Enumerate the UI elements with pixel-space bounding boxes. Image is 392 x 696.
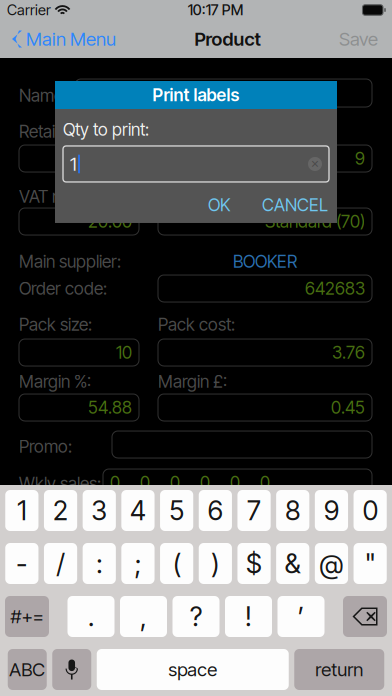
staticText: #+= [10,605,43,628]
staticText: . [88,600,94,633]
button[interactable]: , [120,596,167,637]
staticText: Order code: [19,278,107,299]
button[interactable] [112,431,372,458]
button[interactable]: Standard (70) [158,208,372,235]
button[interactable]: 54.88 [19,394,139,421]
staticText: Standard (70) [265,211,365,232]
staticText: - [16,547,27,580]
staticText: 0.45 [331,397,365,418]
button[interactable]: 7 [237,490,271,531]
button[interactable]: ’ [277,596,324,637]
staticText: Wkly sales: [19,473,101,494]
button[interactable]: ) [199,543,232,584]
staticText: 2 [53,494,68,527]
staticText: CANCEL [262,194,328,215]
staticText: 10 [116,342,132,363]
button[interactable]: 3.76 [158,339,372,366]
button[interactable]: Save [339,20,392,58]
staticText: Main Menu [26,28,116,50]
staticText: ; [134,547,141,580]
staticText: ! [245,600,252,633]
button[interactable]: 9 [158,145,372,172]
staticText: 9 [355,148,365,169]
staticText: " [365,547,376,580]
staticText: , [140,600,147,633]
button[interactable]: Dictate [52,649,91,690]
staticText: & [285,547,301,580]
button[interactable]: 642683 [158,275,372,302]
button[interactable]: ; [121,543,155,584]
staticText: Product [194,28,260,50]
button[interactable]: ? [172,596,219,637]
button[interactable]: " [353,543,387,584]
staticText: OK [208,194,230,215]
button[interactable]: : [83,543,116,584]
staticText: 642683 [305,278,365,299]
button[interactable]: & [276,543,309,584]
staticText: space [168,658,217,681]
button[interactable]: 0.45 [158,394,372,421]
staticText: Main supplier: [19,251,121,272]
staticText: Retail price: [19,121,103,142]
staticText: 8 [285,494,300,527]
staticText: Carrier [7,1,51,19]
button[interactable]: Delete [343,596,387,637]
button[interactable]: ABC [8,649,47,690]
button[interactable]: BOOKER [158,251,372,272]
button[interactable]: 10 [19,339,139,366]
button[interactable]: 6 [199,490,232,531]
staticText: ) [211,547,219,580]
button[interactable]: ( [160,543,193,584]
button[interactable]: 0 [353,490,387,531]
button[interactable]: 2 [44,490,77,531]
staticText: Margin £: [158,371,227,392]
staticText: 7 [247,494,261,527]
button[interactable]: space [97,649,289,690]
button[interactable]: 8 [276,490,309,531]
button[interactable]: . [67,596,114,637]
staticText: @ [319,547,343,580]
staticText: 0 0 0 0 0 0 [110,472,270,493]
staticText: 1 [70,153,77,175]
button[interactable]: return [294,649,384,690]
staticText: 20.00 [88,211,132,232]
button[interactable]: #+= [5,596,49,637]
button[interactable]: COCA COLA 1.25L [75,79,372,107]
button[interactable]: 4 [121,490,155,531]
button[interactable]: @ [315,543,348,584]
staticText: Pack size: [19,314,92,335]
button[interactable]: $ [237,543,271,584]
button[interactable]: CANCEL [261,192,329,218]
staticText: 4 [130,494,146,527]
staticText: 54.88 [88,397,132,418]
staticText: 3 [91,494,107,527]
button[interactable]: / [44,543,77,584]
staticText: $ [246,547,262,580]
button[interactable]: 1.25 [19,145,139,172]
staticText: / [57,547,65,580]
button[interactable]: 20.00 [19,208,139,235]
staticText: 6 [208,494,223,527]
staticText: 5 [169,494,184,527]
button[interactable]: 3 [83,490,116,531]
staticText: BOOKER [233,251,297,272]
button[interactable]: ! [225,596,272,637]
staticText: ABC [9,658,45,681]
button[interactable]: - [5,543,38,584]
staticText: Pack cost: [158,314,235,335]
staticText: VAT rate: [19,186,85,207]
button[interactable]: 5 [160,490,193,531]
staticText: 3.76 [332,342,365,363]
button[interactable]: 0 0 0 0 0 0 [103,469,372,496]
button[interactable]: 1 [5,490,38,531]
button[interactable]: OK [193,192,245,218]
button[interactable]: 9 [315,490,348,531]
button[interactable]: Main Menu [0,20,116,58]
staticText: Save [339,28,378,50]
staticText: ✕ [310,158,319,170]
staticText: Margin %: [19,371,91,392]
staticText: Name: [19,85,67,106]
staticText: Print labels [152,84,239,105]
staticText: return [315,658,363,681]
